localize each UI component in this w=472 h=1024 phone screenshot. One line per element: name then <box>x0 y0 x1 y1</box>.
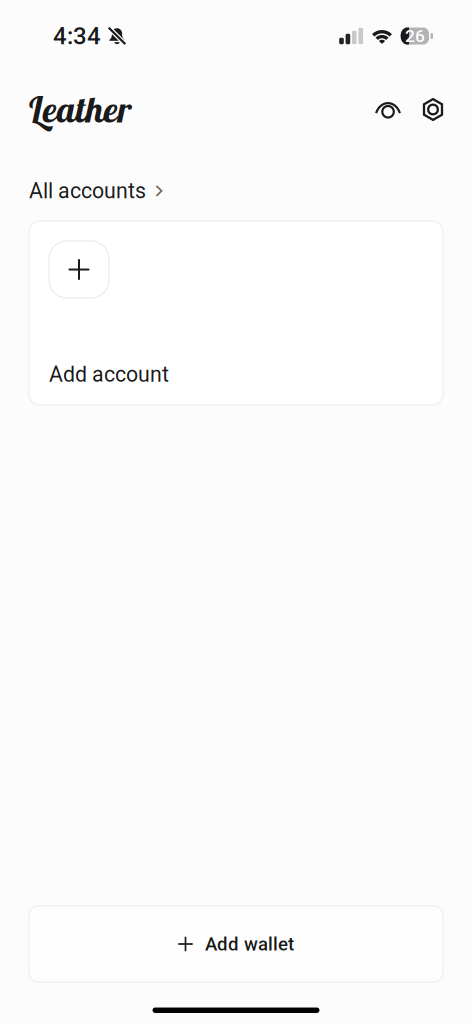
button[interactable]: Add account <box>0 221 472 405</box>
button[interactable]: Add wallet <box>0 906 472 982</box>
staticText: Add wallet <box>205 933 294 955</box>
button[interactable]: All accounts <box>0 171 472 211</box>
staticText: Leather <box>29 86 132 131</box>
staticText: 4:34 <box>53 22 101 50</box>
staticText: Add account <box>49 362 169 387</box>
button[interactable]: Toggle balance visibility <box>365 90 411 136</box>
staticText: All accounts <box>29 178 146 203</box>
staticText: 26 <box>405 26 425 46</box>
button[interactable]: Settings <box>411 90 455 136</box>
